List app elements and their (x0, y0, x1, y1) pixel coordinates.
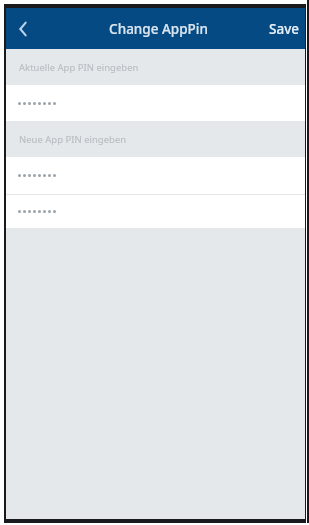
button[interactable]: Neue App PIN wiederholen (6, 195, 305, 228)
button[interactable]: Neue App PIN (6, 157, 305, 194)
staticText: Neue App PIN eingeben (19, 133, 127, 146)
button[interactable]: Aktuelle App PIN (6, 85, 305, 121)
button[interactable]: Back (6, 11, 42, 47)
staticText: Aktuelle App PIN eingeben (19, 61, 139, 74)
staticText: Save (269, 20, 300, 38)
staticText: Change AppPin (109, 20, 208, 38)
button[interactable]: Save (258, 12, 305, 46)
